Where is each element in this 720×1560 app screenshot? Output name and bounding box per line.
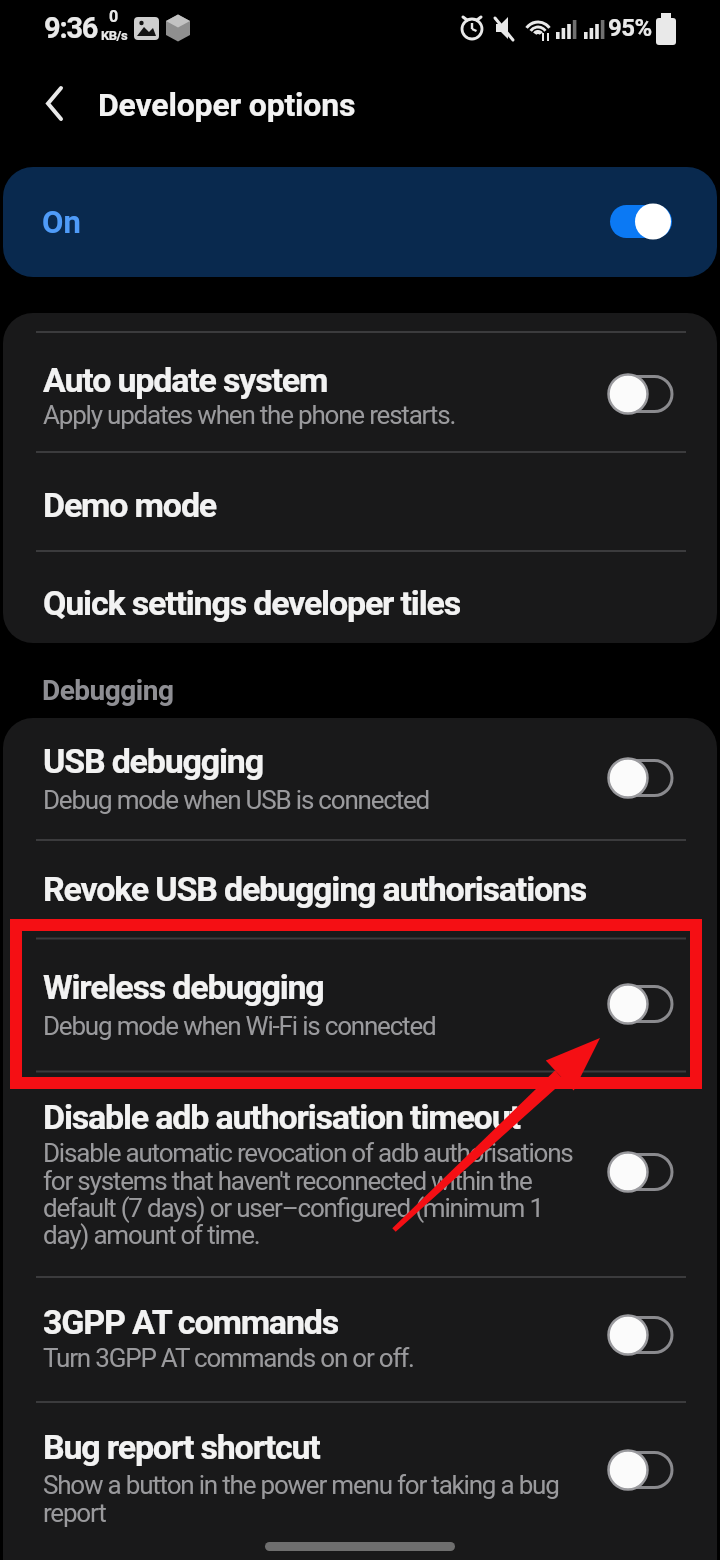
- staticText: Quick settings developer tiles: [43, 583, 460, 623]
- staticText: Debug mode when USB is connected: [43, 785, 430, 815]
- staticText: Turn 3GPP AT commands on or off.: [43, 1343, 414, 1373]
- staticText: Developer options: [98, 86, 356, 124]
- button[interactable]: Revoke USB debugging authorisations: [3, 842, 717, 936]
- button[interactable]: USB debugging: [3, 720, 717, 838]
- staticText: Revoke USB debugging authorisations: [43, 869, 587, 909]
- staticText: Wireless debugging: [43, 967, 324, 1007]
- staticText: Disable adb authorisation timeout: [43, 1097, 520, 1137]
- staticText: 3GPP AT commands: [43, 1302, 339, 1342]
- staticText: 95%: [608, 14, 652, 42]
- button[interactable]: On: [3, 167, 717, 277]
- staticText: Apply updates when the phone restarts.: [43, 400, 456, 430]
- staticText: USB debugging: [43, 741, 263, 781]
- staticText: KB/s: [101, 28, 128, 43]
- button[interactable]: Demo mode: [3, 455, 717, 550]
- staticText: On: [42, 204, 81, 240]
- button[interactable]: Bug report shortcut: [3, 1404, 717, 1560]
- button[interactable]: Auto update system: [3, 335, 717, 445]
- staticText: Debugging: [42, 674, 174, 707]
- button[interactable]: Disable adb authorisation timeout: [3, 1074, 717, 1274]
- staticText: Show a button in the power menu for taki…: [43, 1470, 559, 1528]
- button[interactable]: [30, 80, 80, 130]
- staticText: Bug report shortcut: [43, 1427, 320, 1467]
- staticText: Demo mode: [43, 485, 217, 525]
- staticText: 9:36: [44, 11, 98, 45]
- staticText: 0: [109, 7, 119, 26]
- button[interactable]: 3GPP AT commands: [3, 1279, 717, 1401]
- staticText: Debug mode when Wi-Fi is connected: [43, 1011, 436, 1041]
- button[interactable]: Quick settings developer tiles: [3, 553, 717, 641]
- staticText: Auto update system: [43, 360, 328, 400]
- staticText: Disable automatic revocation of adb auth…: [43, 1138, 573, 1250]
- button[interactable]: Wireless debugging: [3, 940, 717, 1070]
